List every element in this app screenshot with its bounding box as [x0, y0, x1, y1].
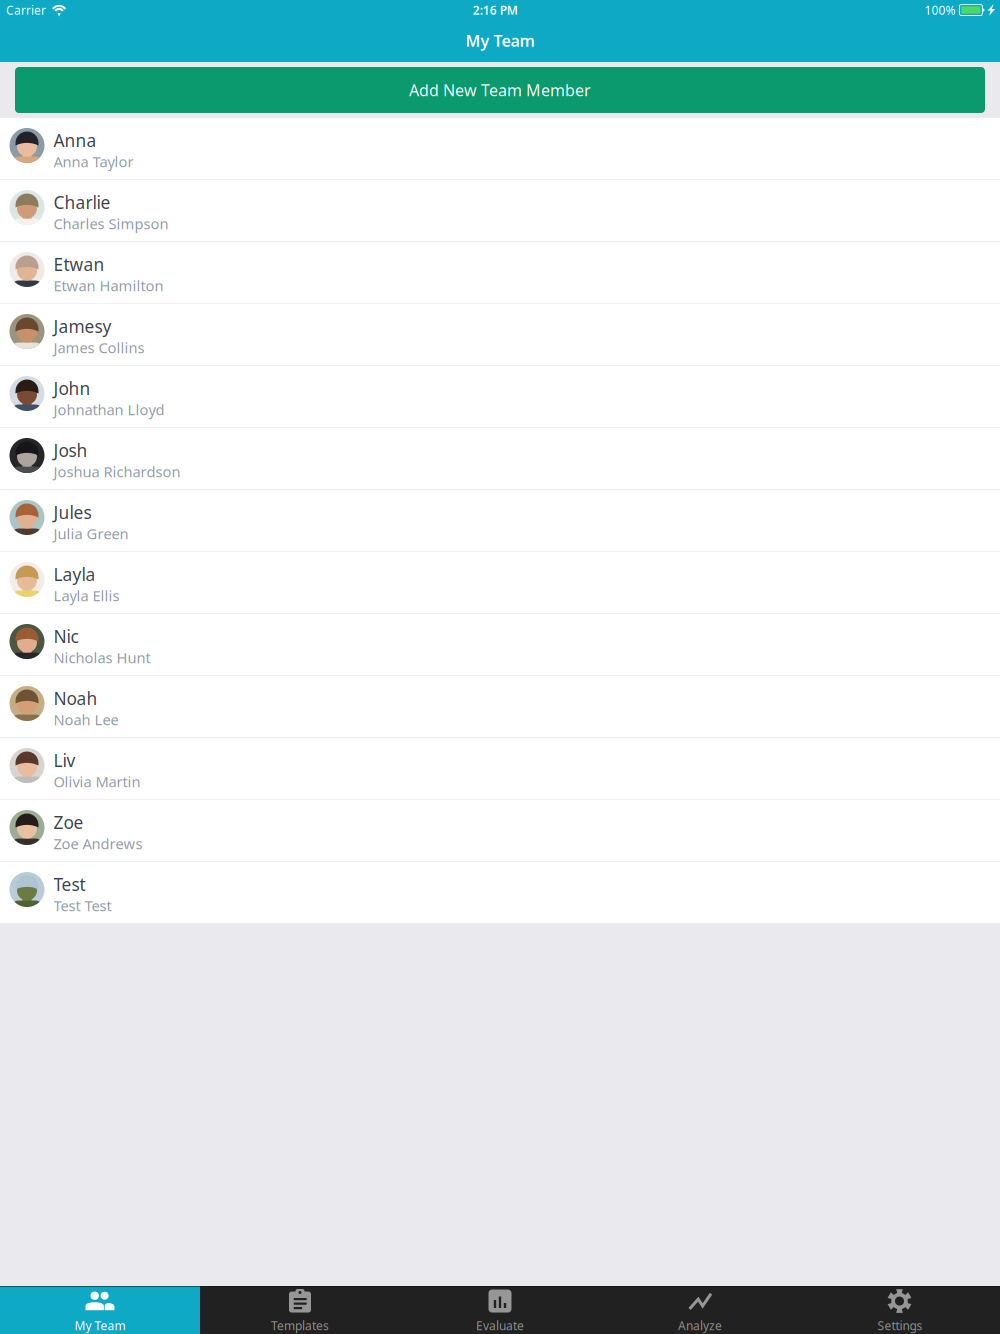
staticText: Carrier [6, 2, 46, 18]
staticText: Anna Taylor [53, 152, 133, 171]
button[interactable]: Charlie [0, 180, 1000, 242]
staticText: Etwan Hamilton [53, 276, 163, 295]
staticText: Zoe Andrews [53, 834, 142, 853]
staticText: Charlie [53, 191, 110, 214]
button[interactable]: Evaluate [400, 1286, 600, 1334]
button[interactable]: Noah [0, 676, 1000, 738]
staticText: 100% [924, 2, 955, 18]
staticText: Test [53, 873, 85, 896]
button[interactable]: Layla [0, 552, 1000, 614]
button[interactable]: Josh [0, 428, 1000, 490]
staticText: James Collins [53, 338, 144, 357]
staticText: Liv [53, 749, 75, 772]
button[interactable]: Settings [800, 1286, 1000, 1334]
staticText: Noah [53, 687, 97, 710]
staticText: Layla Ellis [53, 586, 119, 605]
staticText: Joshua Richardson [53, 462, 180, 481]
staticText: Olivia Martin [53, 772, 140, 791]
button[interactable]: Templates [200, 1286, 400, 1334]
staticText: Analyze [678, 1317, 722, 1333]
staticText: Jules [53, 501, 91, 524]
staticText: 2:16 PM [473, 2, 518, 18]
button[interactable]: Liv [0, 738, 1000, 800]
button[interactable]: Etwan [0, 242, 1000, 304]
staticText: My Team [74, 1317, 125, 1333]
button[interactable]: Jules [0, 490, 1000, 552]
button[interactable]: Nic [0, 614, 1000, 676]
button[interactable]: Add New Team Member [15, 67, 985, 113]
button[interactable]: John [0, 366, 1000, 428]
staticText: Johnathan Lloyd [53, 400, 164, 419]
button[interactable]: My Team [0, 1286, 200, 1334]
staticText: Templates [271, 1317, 329, 1333]
staticText: Charles Simpson [53, 214, 168, 233]
staticText: Add New Team Member [409, 79, 591, 101]
staticText: Julia Green [53, 524, 128, 543]
staticText: Nicholas Hunt [53, 648, 150, 667]
staticText: Noah Lee [53, 710, 118, 729]
staticText: Zoe [53, 811, 83, 834]
staticText: Settings [877, 1317, 922, 1333]
staticText: Test Test [53, 896, 111, 915]
staticText: Layla [53, 563, 95, 586]
button[interactable]: Test [0, 862, 1000, 924]
staticText: Josh [53, 439, 87, 462]
staticText: John [53, 377, 90, 400]
button[interactable]: Anna [0, 118, 1000, 180]
staticText: Jamesy [53, 315, 111, 338]
button[interactable]: Analyze [600, 1286, 800, 1334]
button[interactable]: Zoe [0, 800, 1000, 862]
button[interactable]: Jamesy [0, 304, 1000, 366]
staticText: Evaluate [476, 1317, 524, 1333]
staticText: Etwan [53, 253, 104, 276]
staticText: Anna [53, 129, 96, 152]
staticText: Nic [53, 625, 78, 648]
staticText: My Team [465, 30, 534, 51]
